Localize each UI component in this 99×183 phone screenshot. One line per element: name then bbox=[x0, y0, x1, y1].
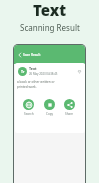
staticText: Share bbox=[65, 112, 74, 116]
button[interactable]: Copy bbox=[44, 99, 55, 116]
staticText: Search bbox=[24, 112, 34, 116]
staticText: Copy bbox=[46, 112, 54, 116]
staticText: Scanning Result bbox=[20, 22, 80, 33]
button[interactable]: Back bbox=[17, 52, 22, 57]
button[interactable]: Favorite bbox=[77, 69, 81, 73]
staticText: Text bbox=[29, 66, 37, 71]
button[interactable]: Share bbox=[64, 99, 75, 116]
staticText: 26 May 2023 04:38:45 bbox=[29, 72, 58, 76]
staticText: Tr bbox=[21, 69, 25, 74]
staticText: a book or other written or printed work. bbox=[17, 80, 55, 89]
staticText: Scan Result bbox=[23, 53, 41, 57]
staticText: Text bbox=[33, 0, 67, 20]
button[interactable]: Search bbox=[23, 99, 34, 116]
